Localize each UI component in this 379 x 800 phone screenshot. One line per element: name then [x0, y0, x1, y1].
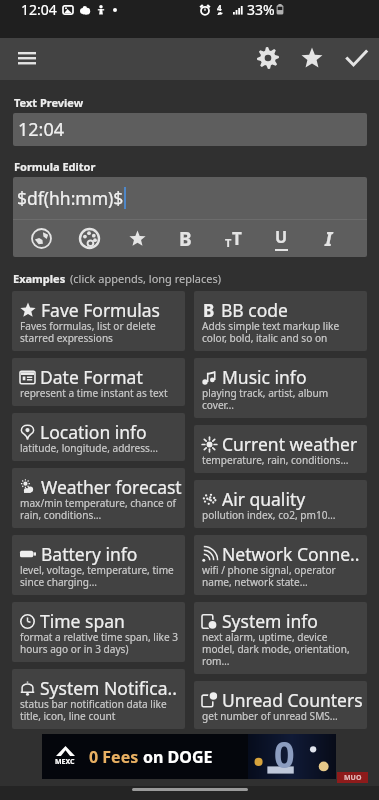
staticText: I	[325, 226, 333, 252]
staticText: pollution index, co2, pm10…	[202, 508, 336, 522]
staticText: 12:04	[18, 117, 65, 142]
button[interactable]: Settings	[248, 38, 288, 78]
button[interactable]: Fave Formulas	[12, 291, 185, 351]
staticText: Faves formulas, list or delete starred e…	[20, 319, 156, 345]
staticText: System Notifica..	[40, 676, 177, 700]
button[interactable]: 12:04	[13, 113, 367, 146]
button[interactable]: MEXC	[42, 734, 336, 779]
staticText: System info	[222, 609, 318, 633]
staticText: format a relative time span, like 3 hour…	[20, 630, 178, 656]
staticText: 12:04	[21, 0, 57, 19]
button[interactable]: Network Conne..	[194, 535, 367, 595]
button[interactable]: Italic	[310, 221, 348, 256]
staticText: Battery info	[41, 542, 138, 566]
staticText: Location info	[40, 420, 147, 444]
staticText: B	[179, 226, 192, 252]
staticText: next alarm, uptime, device model, dark m…	[202, 630, 350, 668]
button[interactable]: B	[194, 291, 367, 351]
button[interactable]: Battery info	[12, 535, 185, 595]
staticText: status bar notification data like title,…	[20, 697, 167, 723]
staticText: 4G	[217, 2, 227, 15]
staticText: Date Format	[40, 365, 143, 389]
button[interactable]: Current weather	[194, 425, 367, 473]
button[interactable]: Color	[70, 221, 108, 256]
button[interactable]: Date Format	[12, 358, 185, 406]
button[interactable]: Bold	[166, 221, 204, 256]
staticText: MUO	[344, 773, 362, 783]
staticText: represent a time instant as text	[20, 386, 168, 400]
staticText: Text Preview	[14, 95, 84, 110]
button[interactable]: Underline	[262, 221, 300, 256]
staticText: get number of unread SMS…	[202, 709, 338, 723]
staticText: playing track, artist, album cover…	[202, 386, 329, 412]
button[interactable]: Favorite	[118, 221, 156, 256]
staticText: Unread Counters	[222, 688, 363, 712]
staticText: wifi / phone signal, operator name, netw…	[202, 563, 336, 589]
staticText: Music info	[222, 365, 307, 389]
button[interactable]: Favorites	[292, 38, 332, 78]
button[interactable]: Music info	[194, 358, 367, 418]
button[interactable]: Weather forecast	[12, 468, 185, 528]
button[interactable]: Air quality	[194, 480, 367, 528]
staticText: BB code	[221, 298, 288, 322]
staticText: 0 Fees	[89, 746, 139, 768]
staticText: on DOGE	[143, 746, 213, 768]
staticText: T	[232, 227, 242, 250]
staticText: Adds simple text markup like color, bold…	[202, 319, 340, 345]
button[interactable]: $df(hh:mm)$	[13, 177, 367, 219]
button[interactable]: Menu	[7, 38, 47, 78]
staticText: Formula Editor	[14, 159, 96, 174]
staticText: $df(hh:mm)$	[17, 186, 124, 210]
staticText: 0	[274, 730, 295, 775]
staticText: U	[275, 226, 288, 248]
staticText: B	[203, 299, 215, 322]
staticText: Current weather	[222, 432, 358, 456]
staticText: temperature, rain, conditions…	[202, 453, 349, 467]
staticText: 33%	[247, 0, 275, 19]
button[interactable]: Location info	[12, 413, 185, 461]
button[interactable]: Unread Counters	[194, 681, 367, 729]
staticText: Air quality	[222, 487, 306, 511]
staticText: Weather forecast	[41, 475, 182, 499]
staticText: MEXC	[55, 757, 75, 767]
staticText: T	[225, 235, 232, 250]
staticText: Network Conne..	[222, 542, 360, 566]
button[interactable]: System Notifica..	[12, 669, 185, 729]
button[interactable]: System info	[194, 602, 367, 674]
button[interactable]: Done	[336, 38, 376, 78]
button[interactable]: Time span	[12, 602, 185, 662]
staticText: Examples	[13, 271, 66, 286]
staticText: level, voltage, temperature, time since …	[20, 563, 174, 589]
staticText: Fave Formulas	[41, 298, 160, 322]
staticText: (click appends, long replaces)	[70, 271, 222, 286]
button[interactable]: Globe	[22, 221, 60, 256]
staticText: max/min temperature, chance of rain, con…	[20, 496, 176, 522]
staticText: latitude, longitude, address…	[20, 441, 158, 455]
staticText: Time span	[40, 609, 125, 633]
button[interactable]: Text size	[214, 221, 252, 256]
